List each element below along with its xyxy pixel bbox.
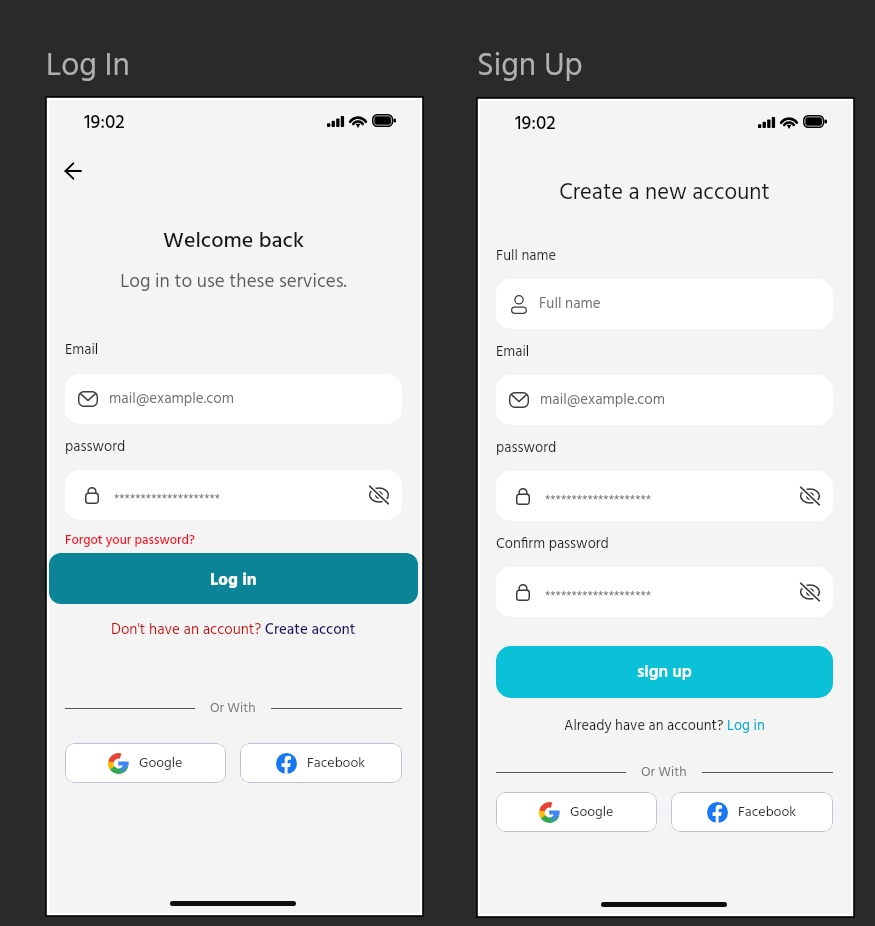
staticText: Sign Up (477, 41, 583, 92)
button[interactable]: ******************** (496, 471, 833, 521)
staticText: password (496, 437, 557, 460)
button[interactable]: mail@example.com (496, 375, 833, 425)
button[interactable]: Back (53, 151, 93, 191)
staticText: password (65, 436, 126, 459)
staticText: sign up (637, 659, 692, 686)
staticText: Confirm password (496, 533, 609, 556)
button[interactable]: Forgot your password? (65, 530, 195, 551)
button[interactable]: Facebook (240, 743, 402, 783)
button[interactable]: Already have an account? Log in (477, 715, 852, 738)
staticText: Full name (496, 245, 556, 268)
staticText: Facebook (738, 801, 797, 823)
button[interactable]: Facebook (671, 792, 833, 832)
staticText: 19:02 (84, 108, 125, 138)
button[interactable]: Don't have an account? Create accont (46, 618, 421, 642)
staticText: Facebook (307, 752, 366, 774)
staticText: mail@example.com (540, 388, 665, 412)
staticText: Create a new account (477, 175, 852, 211)
button[interactable]: Toggle password visibility (792, 471, 828, 521)
staticText: 19:02 (515, 109, 556, 139)
staticText: Don't have an account? Create accont (111, 618, 356, 642)
button[interactable]: Log in (49, 553, 418, 604)
button[interactable]: ******************** (65, 470, 402, 520)
staticText: Forgot your password? (65, 530, 195, 551)
staticText: Welcome back (46, 224, 421, 259)
button[interactable]: Full name (496, 279, 833, 329)
staticText: Log in to use these services. (46, 267, 421, 297)
staticText: Full name (539, 292, 601, 316)
button[interactable]: sign up (496, 646, 833, 698)
staticText: ******************** (545, 586, 652, 607)
staticText: Email (65, 339, 99, 362)
button[interactable]: Toggle password visibility (361, 470, 397, 520)
staticText: mail@example.com (109, 387, 234, 411)
button[interactable]: Toggle confirm password visibility (792, 567, 828, 617)
staticText: Or With (641, 762, 687, 782)
staticText: Log in (210, 567, 257, 594)
staticText: ******************** (545, 490, 652, 511)
button[interactable]: Google (496, 792, 657, 832)
staticText: Log In (46, 41, 130, 92)
staticText: Or With (210, 698, 256, 718)
staticText: Already have an account? Log in (564, 715, 765, 738)
staticText: Email (496, 341, 530, 364)
staticText: ******************** (114, 489, 221, 510)
staticText: Google (570, 801, 614, 823)
button[interactable]: Google (65, 743, 226, 783)
button[interactable]: mail@example.com (65, 374, 402, 424)
button[interactable]: ******************** (496, 567, 833, 617)
staticText: Google (139, 752, 183, 774)
